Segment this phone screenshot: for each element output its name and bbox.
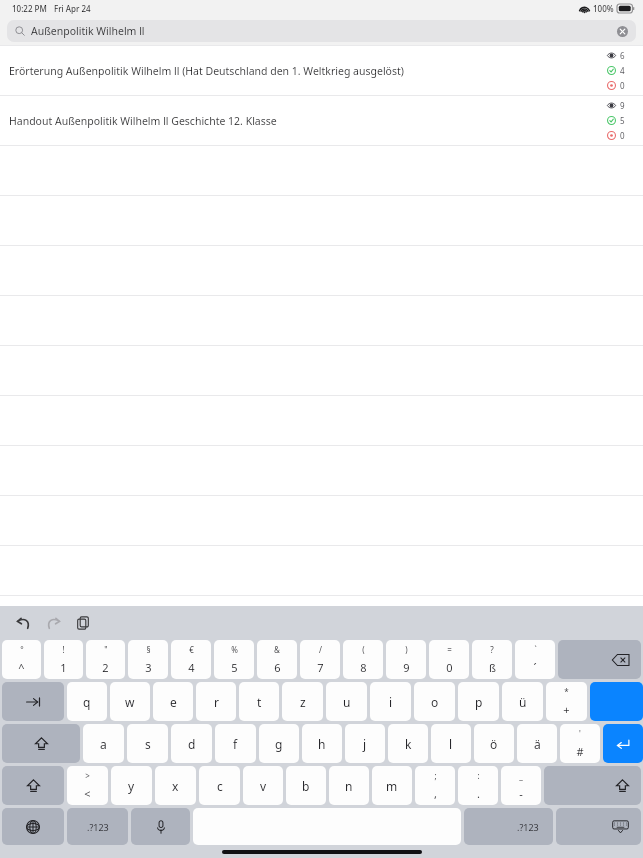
button[interactable]: ° [2, 640, 41, 679]
button[interactable]: f [215, 724, 256, 763]
staticText: , [434, 786, 437, 801]
button[interactable]: > [67, 766, 108, 805]
button[interactable]: v [243, 766, 283, 805]
button[interactable]: ö [474, 724, 514, 763]
staticText: 5 [231, 660, 238, 675]
button[interactable]: ä [517, 724, 557, 763]
button[interactable]: Außenpolitik Wilhelm ll [7, 20, 636, 42]
button[interactable]: Return [603, 724, 643, 763]
button[interactable]: x [155, 766, 196, 805]
button[interactable]: g [259, 724, 299, 763]
staticText: v [260, 778, 267, 794]
button[interactable]: .?123 [464, 808, 553, 845]
button[interactable]: e [153, 682, 193, 721]
button[interactable]: Dictate [131, 808, 190, 845]
button[interactable]: € [171, 640, 211, 679]
button[interactable]: ' [560, 724, 600, 763]
staticText: ? [490, 644, 494, 655]
button[interactable]: y [111, 766, 152, 805]
staticText: u [343, 694, 351, 710]
button[interactable]: ; [415, 766, 455, 805]
button[interactable]: i [370, 682, 411, 721]
button[interactable]: Undo [10, 610, 36, 636]
staticText: * [564, 686, 569, 697]
button[interactable]: % [214, 640, 254, 679]
button[interactable]: z [282, 682, 323, 721]
button[interactable]: Handout Außenpolitik Wilhelm ll Geschich… [0, 96, 643, 145]
button[interactable]: / [300, 640, 340, 679]
button[interactable]: _ [501, 766, 541, 805]
button[interactable]: : [458, 766, 498, 805]
button[interactable]: " [86, 640, 125, 679]
button[interactable]: c [199, 766, 240, 805]
button[interactable]: ! [44, 640, 83, 679]
staticText: Fri Apr 24 [54, 3, 91, 14]
button[interactable]: Hide keyboard [556, 808, 641, 845]
button[interactable]: Paste [70, 610, 96, 636]
staticText: ß [489, 660, 496, 675]
button[interactable]: o [414, 682, 455, 721]
staticText: 9 [620, 100, 625, 111]
staticText: Handout Außenpolitik Wilhelm ll Geschich… [9, 114, 277, 128]
button[interactable]: a [83, 724, 124, 763]
button[interactable]: t [239, 682, 279, 721]
staticText: ` [534, 644, 537, 655]
button[interactable]: u [326, 682, 367, 721]
button[interactable]: d [171, 724, 212, 763]
button[interactable]: Erörterung Außenpolitik Wilhelm ll (Hat … [0, 46, 643, 95]
button[interactable]: Shift [2, 766, 64, 805]
staticText: 5 [620, 115, 625, 126]
button[interactable]: ü [502, 682, 543, 721]
button[interactable]: r [196, 682, 236, 721]
staticText: r [214, 694, 219, 710]
button[interactable]: j [345, 724, 385, 763]
staticText: ° [20, 644, 24, 655]
button[interactable]: Return [590, 682, 643, 721]
button[interactable]: m [372, 766, 412, 805]
button[interactable]: k [388, 724, 428, 763]
button[interactable]: = [429, 640, 469, 679]
button[interactable]: ) [386, 640, 426, 679]
button[interactable]: * [546, 682, 587, 721]
button[interactable]: l [431, 724, 471, 763]
button[interactable]: Change keyboard [2, 808, 64, 845]
button[interactable]: w [110, 682, 150, 721]
staticText: _ [519, 770, 523, 781]
button[interactable]: Shift [2, 724, 80, 763]
staticText: ( [362, 644, 365, 655]
button[interactable]: ? [472, 640, 512, 679]
button[interactable]: Clear search [612, 21, 632, 41]
staticText: 9 [403, 660, 410, 675]
staticText: 6 [274, 660, 281, 675]
button[interactable]: § [128, 640, 168, 679]
button[interactable]: Tab [2, 682, 64, 721]
button[interactable] [0, 596, 643, 645]
button[interactable]: s [127, 724, 168, 763]
button[interactable]: & [257, 640, 297, 679]
button[interactable]: h [302, 724, 342, 763]
button[interactable]: b [286, 766, 326, 805]
button[interactable]: ` [515, 640, 555, 679]
button[interactable]: Redo [40, 610, 66, 636]
button[interactable]: .?123 [67, 808, 128, 845]
button[interactable]: ( [343, 640, 383, 679]
button[interactable]: q [67, 682, 107, 721]
button[interactable]: Backspace [558, 640, 641, 679]
staticText: j [363, 736, 367, 752]
staticText: w [125, 694, 135, 710]
button[interactable]: p [458, 682, 499, 721]
button[interactable]: n [329, 766, 369, 805]
staticText: 7 [317, 660, 324, 675]
button[interactable]: Shift [544, 766, 641, 805]
staticText: 2 [102, 660, 109, 675]
